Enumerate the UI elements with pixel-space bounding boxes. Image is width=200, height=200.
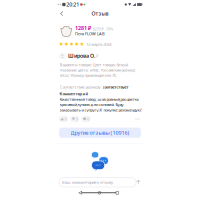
staticText: соответствует [102,84,128,89]
staticText: Варианты товара: Цвет товара: белый. Наз… [59,62,135,78]
button[interactable]: Dislike [70,116,79,122]
staticText: Качественный товар, шов ровный,расцветка… [59,97,141,112]
staticText: Другие отзывы (10916) [70,129,129,136]
staticText: Ваш комментарий к отзыву [62,180,113,185]
button[interactable]: Home [98,191,101,195]
button[interactable]: Back [78,191,82,195]
staticText: 0 [76,116,78,122]
staticText: 0 [64,116,66,122]
staticText: -70% [105,26,113,31]
staticText: 20:21 [66,1,79,8]
button[interactable]: Ваш комментарий к отзыву [59,178,136,187]
button[interactable]: Другие отзывы (10916) [59,128,141,138]
staticText: Отзыв [91,10,108,17]
button[interactable]: Back [58,9,66,18]
staticText: Широва О. [68,52,95,59]
button[interactable]: Comment [81,116,91,122]
staticText: Пена FLOW LAB [75,31,105,36]
button[interactable]: Like [59,116,68,122]
button[interactable]: More options [133,115,141,122]
staticText: Комментарий [59,91,88,96]
staticText: 1281 ₽ [75,24,91,31]
staticText: 4270 ₽ [92,26,103,31]
button[interactable]: Recents [115,191,119,195]
button[interactable]: Send [134,178,142,187]
staticText: Соответствие размеру: [59,84,101,89]
staticText: 12 марта 2024 [86,41,111,47]
staticText: 0 [87,116,89,122]
